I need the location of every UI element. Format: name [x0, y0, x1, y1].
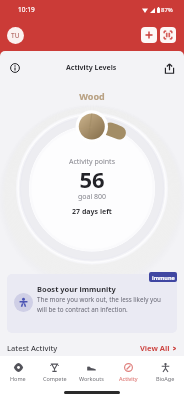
- staticText: TU: [11, 31, 20, 40]
- staticText: Wood: [0, 90, 184, 102]
- button[interactable]: Info: [6, 59, 24, 77]
- button[interactable]: Home: [0, 363, 36, 382]
- button[interactable]: View All: [140, 343, 177, 353]
- staticText: Activity points: [0, 157, 184, 167]
- staticText: immune: [152, 274, 175, 281]
- button[interactable]: Workouts: [73, 363, 110, 382]
- button[interactable]: Share: [160, 59, 178, 77]
- staticText: goal 800: [0, 192, 184, 202]
- staticText: The more you work out, the less likely y…: [37, 295, 161, 314]
- button[interactable]: Profile: [7, 27, 24, 44]
- button[interactable]: Scan: [160, 27, 176, 43]
- staticText: Activity Levels: [66, 63, 117, 73]
- staticText: Home: [10, 375, 26, 382]
- staticText: Compete: [43, 375, 67, 382]
- staticText: 10:19: [18, 5, 35, 14]
- staticText: 27 days left: [0, 207, 184, 217]
- staticText: Activity: [119, 375, 138, 382]
- staticText: Latest Activity: [7, 343, 58, 353]
- staticText: View All: [140, 343, 170, 353]
- staticText: Boost your immunity: [37, 284, 116, 294]
- staticText: Workouts: [79, 375, 104, 382]
- button[interactable]: BioAge: [147, 363, 184, 382]
- button[interactable]: Activity: [110, 363, 147, 382]
- staticText: 87%: [161, 6, 173, 14]
- staticText: 56: [0, 164, 184, 194]
- button[interactable]: Boost your immunity: [7, 274, 177, 333]
- button[interactable]: Compete: [36, 363, 73, 382]
- staticText: BioAge: [156, 375, 175, 382]
- button[interactable]: Add: [141, 27, 157, 43]
